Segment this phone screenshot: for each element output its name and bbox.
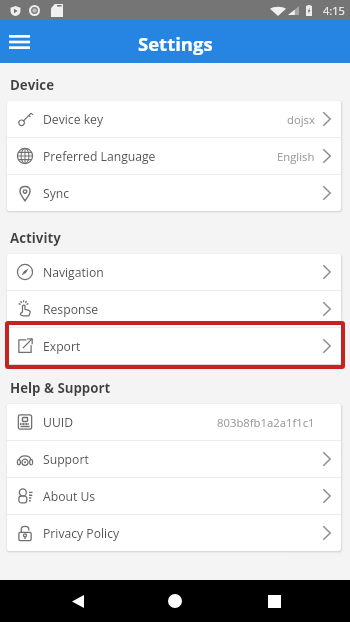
staticText: Activity	[10, 229, 61, 247]
staticText: Device key	[43, 111, 104, 128]
staticText: Settings	[138, 31, 213, 56]
button[interactable]: Device key	[7, 101, 341, 137]
staticText: Privacy Policy	[43, 525, 120, 542]
staticText: UUID	[43, 414, 74, 431]
staticText: 4:15	[323, 3, 345, 18]
staticText: 803b8fb1a2a1f1c1	[217, 415, 315, 430]
staticText: dojsx	[287, 112, 315, 127]
staticText: Preferred Language	[43, 148, 156, 165]
button[interactable]: Recent apps	[250, 580, 298, 622]
button[interactable]: Support	[7, 441, 341, 477]
button[interactable]: About Us	[7, 478, 341, 514]
button[interactable]: Sync	[7, 175, 341, 211]
staticText: Support	[43, 451, 89, 468]
staticText: About Us	[43, 488, 96, 505]
staticText: Help & Support	[10, 379, 111, 397]
button[interactable]: Response	[7, 291, 341, 327]
staticText: Device	[10, 76, 55, 94]
button[interactable]: Back	[54, 580, 102, 622]
staticText: Sync	[43, 185, 70, 202]
button[interactable]: Open navigation menu	[0, 20, 38, 63]
button[interactable]: Home	[151, 580, 199, 622]
staticText: Response	[43, 301, 99, 318]
button[interactable]: Export	[7, 328, 341, 364]
button[interactable]: Preferred Language	[7, 138, 341, 174]
staticText: English	[277, 149, 315, 164]
button[interactable]: UUID	[7, 404, 341, 440]
button[interactable]: Navigation	[7, 254, 341, 290]
staticText: Navigation	[43, 264, 104, 281]
button[interactable]: Export	[5, 321, 345, 369]
staticText: Export	[43, 338, 81, 355]
button[interactable]: Privacy Policy	[7, 515, 341, 551]
